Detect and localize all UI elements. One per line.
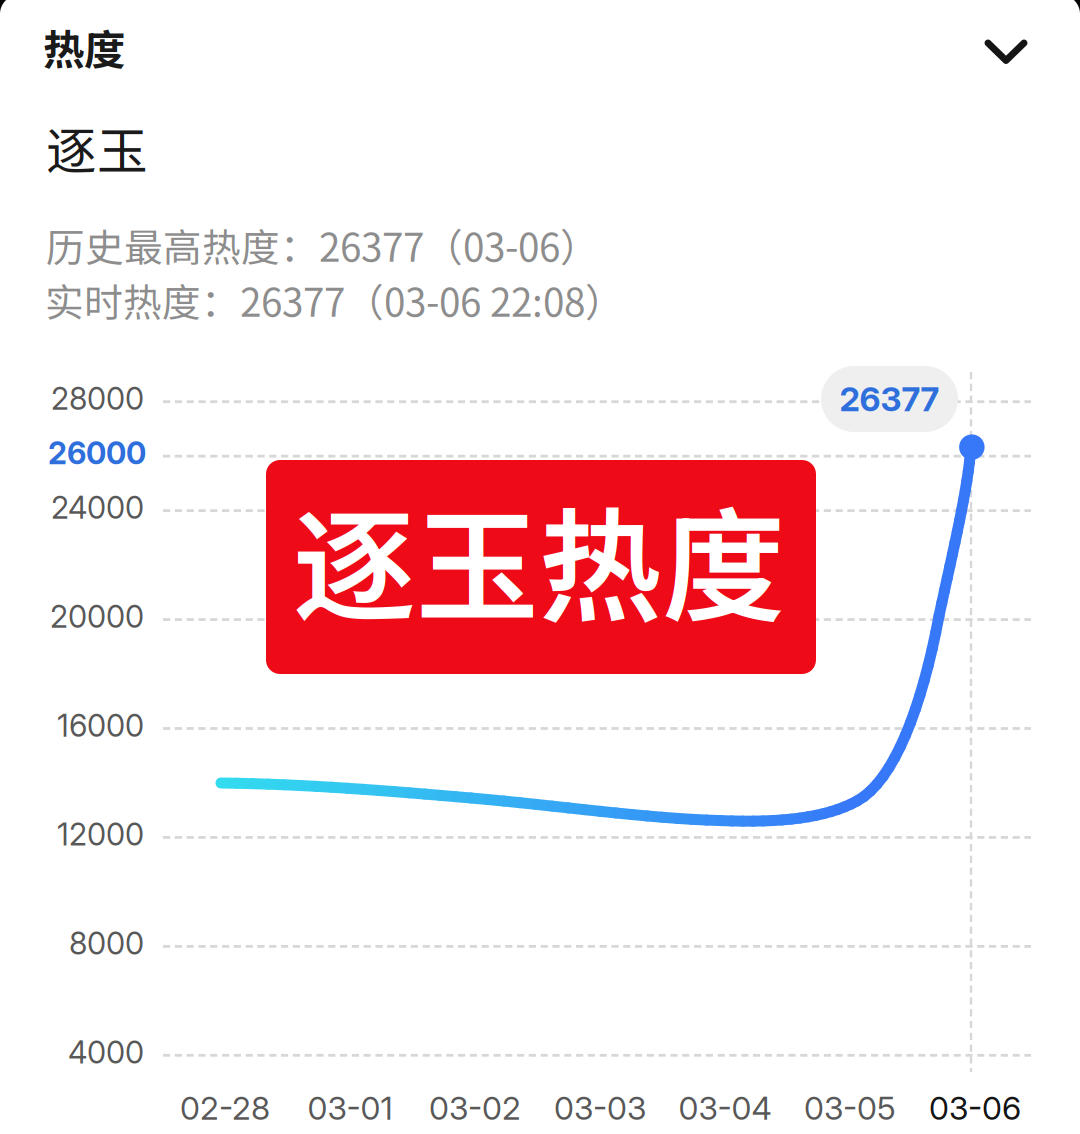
button[interactable]: Collapse xyxy=(958,15,1054,89)
staticText: 26000 xyxy=(48,435,146,472)
staticText: 8000 xyxy=(69,925,144,962)
staticText: 03-05 xyxy=(804,1089,896,1127)
staticText: 16000 xyxy=(57,707,144,744)
staticText: 实时热度：26377（03-06 22:08） xyxy=(45,272,624,328)
staticText: 逐玉 xyxy=(46,111,148,184)
staticText: 热度 xyxy=(43,17,125,77)
staticText: 03-06 xyxy=(929,1089,1021,1127)
staticText: 24000 xyxy=(51,489,144,526)
staticText: 03-02 xyxy=(429,1089,521,1127)
staticText: 历史最高热度：26377（03-06） xyxy=(46,217,599,273)
staticText: 03-03 xyxy=(554,1089,646,1127)
staticText: 02-28 xyxy=(180,1089,270,1127)
staticText: 20000 xyxy=(50,598,144,635)
staticText: 26377 xyxy=(839,379,939,419)
staticText: 03-04 xyxy=(678,1089,771,1127)
staticText: 逐玉热度 xyxy=(293,469,785,647)
staticText: 03-01 xyxy=(307,1089,392,1127)
staticText: 4000 xyxy=(68,1034,144,1071)
staticText: 28000 xyxy=(51,380,144,417)
staticText: 12000 xyxy=(57,816,144,853)
